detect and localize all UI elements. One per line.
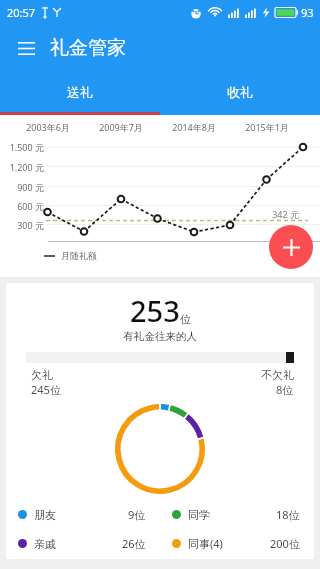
button[interactable]: 亲戚 — [18, 536, 146, 551]
staticText: 同学 — [188, 508, 210, 522]
staticText: 同事(4) — [188, 536, 223, 551]
staticText: 200位 — [270, 536, 300, 551]
staticText: 8位 — [276, 382, 294, 397]
button[interactable]: 送礼 — [0, 71, 160, 112]
staticText: 朋友 — [34, 508, 56, 522]
staticText: 2003年6月 — [18, 121, 78, 133]
button[interactable]: 朋友 — [18, 507, 146, 522]
staticText: 有礼金往来的人 — [6, 330, 314, 343]
staticText: 欠礼 — [31, 368, 53, 382]
button[interactable]: 同事(4) — [172, 536, 300, 551]
staticText: 2015年1月 — [237, 121, 297, 133]
staticText: 送礼 — [67, 84, 93, 100]
staticText: 300 元 — [0, 219, 44, 231]
staticText: 600 元 — [0, 200, 44, 212]
staticText: 26位 — [122, 536, 146, 551]
staticText: 900 元 — [0, 181, 44, 193]
staticText: 1.200 元 — [0, 161, 44, 173]
button[interactable]: Add — [269, 225, 313, 269]
staticText: 2014年8月 — [164, 121, 224, 133]
staticText: 18位 — [276, 507, 300, 522]
staticText: 收礼 — [227, 84, 253, 100]
staticText: 342 元 — [252, 208, 299, 220]
staticText: 245位 — [31, 382, 61, 397]
button[interactable]: 同学 — [172, 507, 300, 522]
staticText: 亲戚 — [34, 537, 56, 551]
staticText: 位 — [180, 312, 191, 326]
staticText: 20:57 — [7, 5, 36, 20]
staticText: 253 — [130, 291, 180, 330]
button[interactable]: 收礼 — [160, 71, 320, 112]
staticText: 礼金管家 — [50, 36, 126, 60]
button[interactable]: Menu — [10, 32, 42, 64]
staticText: 93 — [301, 5, 314, 20]
staticText: 1.500 元 — [0, 141, 44, 153]
staticText: 2009年7月 — [91, 121, 151, 133]
staticText: 月随礼额 — [61, 250, 97, 261]
staticText: 9位 — [128, 507, 146, 522]
staticText: 不欠礼 — [261, 368, 294, 382]
